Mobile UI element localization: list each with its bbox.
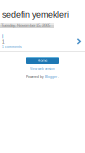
button[interactable]: l bbox=[2, 33, 12, 39]
button[interactable]: Home bbox=[26, 57, 59, 64]
staticText: sedefin yemekleri bbox=[2, 10, 69, 20]
button[interactable]: View web version bbox=[28, 67, 56, 71]
button[interactable]: Blogger bbox=[45, 75, 57, 79]
staticText: View web version bbox=[30, 67, 55, 71]
staticText: 1 bbox=[2, 39, 5, 45]
staticText: . bbox=[58, 75, 59, 79]
staticText: Powered by bbox=[26, 75, 44, 79]
staticText: 1 comments bbox=[2, 45, 22, 49]
staticText: Tuesday, November 15, 2005 bbox=[1, 23, 50, 28]
staticText: l bbox=[2, 33, 3, 39]
staticText: Home bbox=[37, 58, 47, 63]
button[interactable]: 1 comments bbox=[2, 45, 22, 49]
button[interactable]: Newer post bbox=[76, 38, 83, 46]
staticText: Blogger bbox=[45, 75, 57, 79]
